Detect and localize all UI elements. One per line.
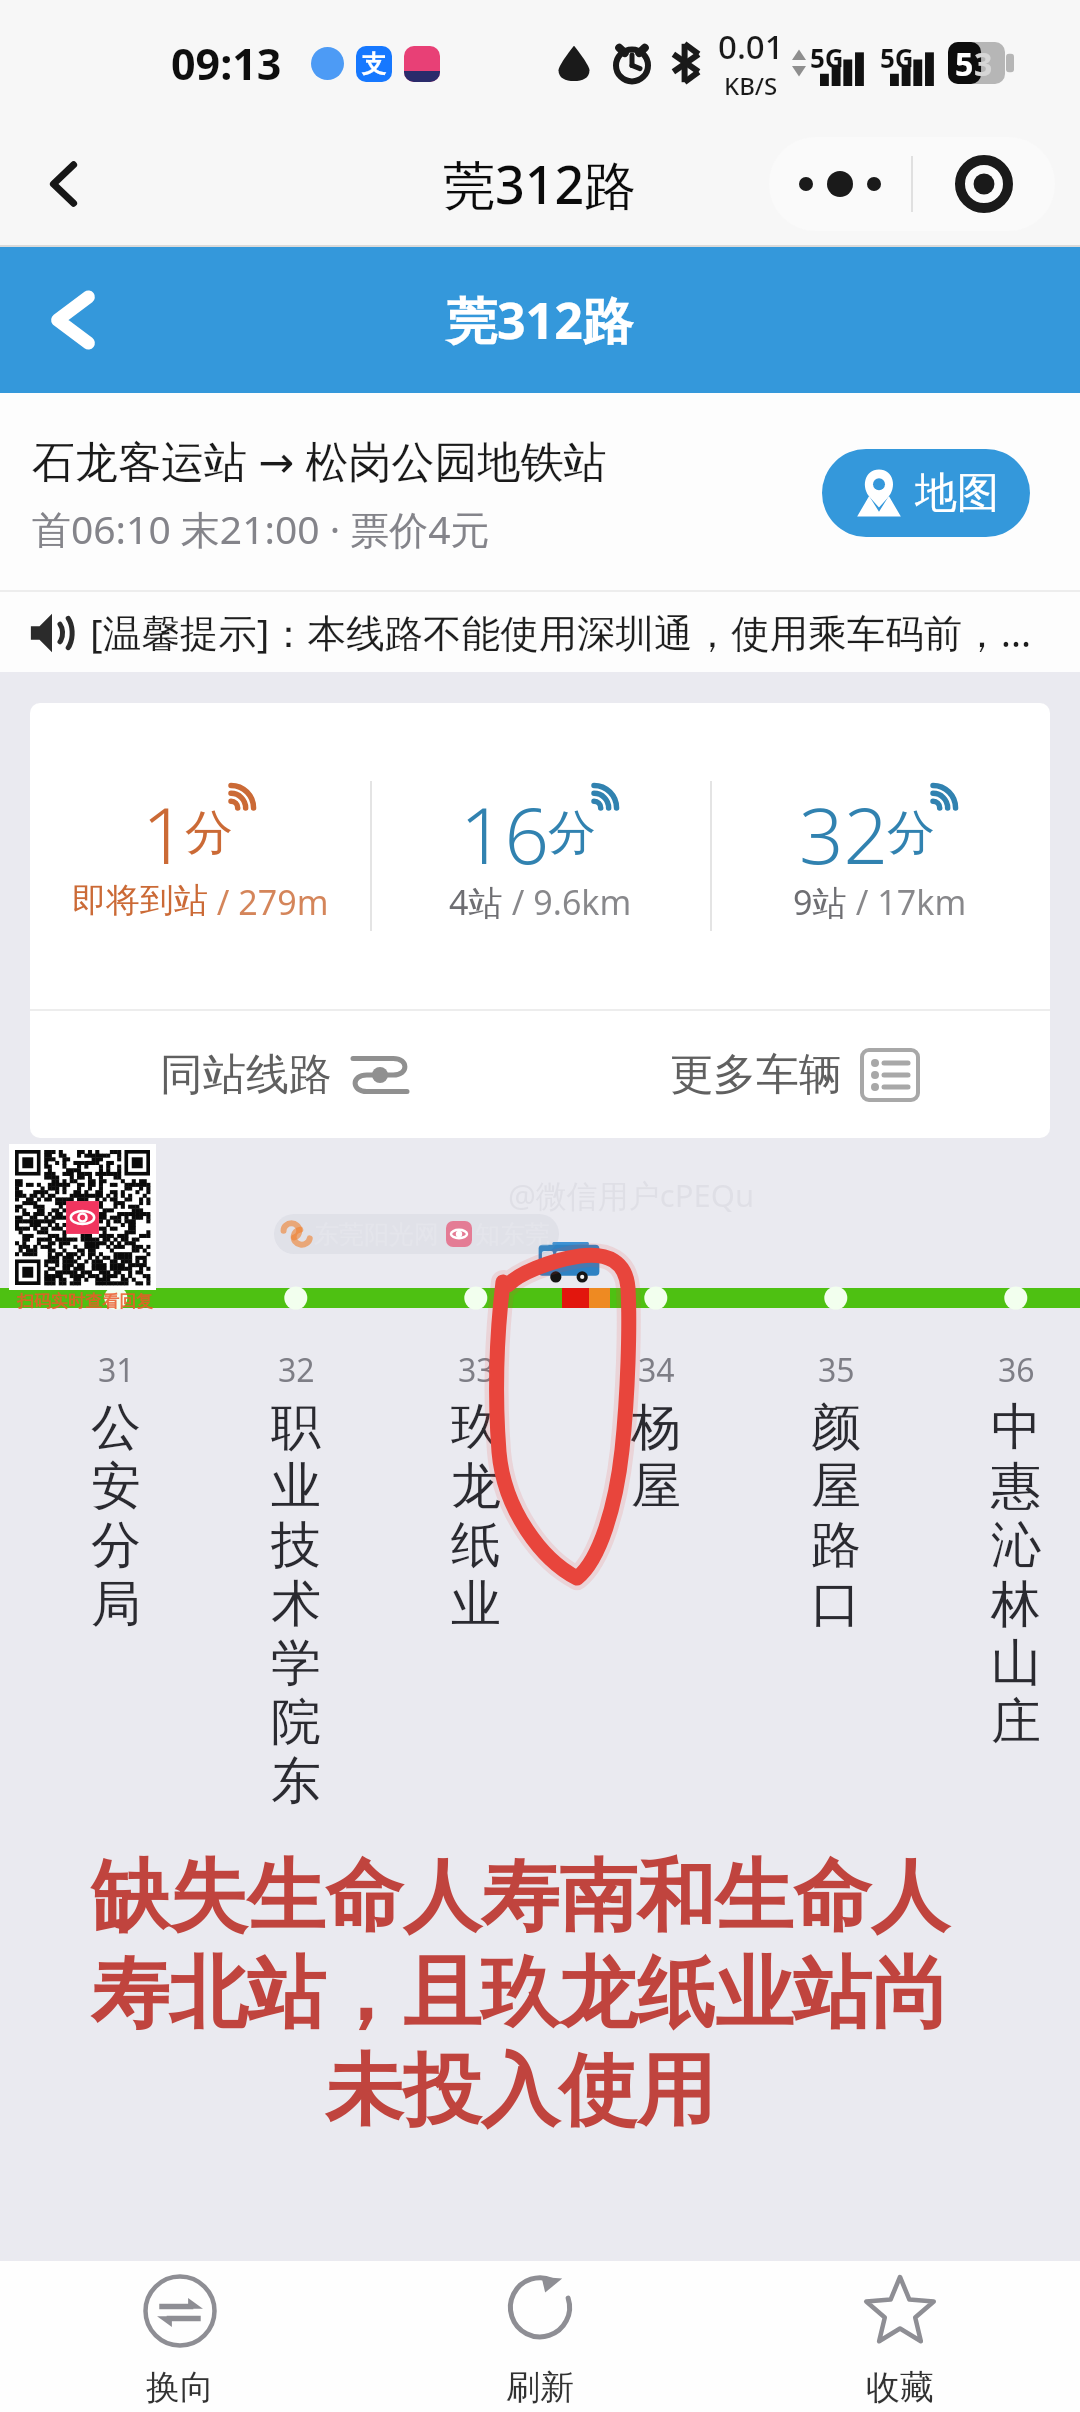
button[interactable]: 34 — [566, 1348, 746, 1518]
staticText: 5 — [955, 42, 974, 84]
staticText: 收藏 — [866, 2366, 934, 2409]
staticText: 35 — [818, 1348, 855, 1392]
button[interactable]: 刷新 — [360, 2261, 720, 2412]
button[interactable]: 更多车辆 — [540, 1011, 1050, 1138]
staticText: 0.01 — [718, 24, 784, 69]
button[interactable]: 36 — [926, 1348, 1080, 1754]
staticText: 莞312路 — [443, 148, 637, 219]
button[interactable]: 31 — [26, 1348, 206, 1636]
staticText: 分 — [185, 803, 233, 863]
button[interactable]: 同站线路 — [30, 1011, 540, 1138]
staticText: 刷新 — [506, 2366, 574, 2409]
staticText: 34 — [638, 1348, 675, 1392]
staticText: 地图 — [915, 467, 999, 520]
staticText: 16 — [460, 781, 550, 887]
staticText: 颜 屋 路 口 — [811, 1396, 861, 1636]
staticText: KB/S — [724, 69, 778, 102]
staticText: 1 — [142, 781, 187, 887]
staticText: / 279m — [208, 879, 329, 925]
staticText: 同站线路 — [160, 1048, 332, 1102]
staticText: 分 — [887, 803, 935, 863]
staticText: 36 — [998, 1348, 1035, 1392]
staticText: / 17km — [847, 879, 967, 925]
staticText: 5G — [810, 40, 844, 75]
staticText: 32 — [278, 1348, 315, 1392]
staticText: 即将到站 — [72, 879, 208, 922]
button[interactable]: More options and Close — [769, 137, 1055, 231]
button[interactable]: Back — [28, 275, 118, 365]
staticText: 缺失生命人寿南和生命人 寿北站，且玖龙纸业站尚 未投入使用 — [91, 1848, 949, 2141]
button[interactable]: 33 — [386, 1348, 566, 1636]
staticText: 5G — [880, 40, 914, 75]
staticText: 公 安 分 局 — [91, 1396, 141, 1636]
button[interactable]: 1 — [30, 703, 370, 1009]
button[interactable]: 收藏 — [720, 2261, 1080, 2412]
button[interactable]: 32 — [206, 1348, 386, 1813]
staticText: / 9.6km — [503, 879, 632, 925]
staticText: 32 — [799, 781, 889, 887]
button[interactable]: 35 — [746, 1348, 926, 1636]
button[interactable]: 地图 — [822, 449, 1030, 537]
button[interactable]: Back — [24, 144, 104, 224]
staticText: 玖 龙 纸 业 — [451, 1396, 501, 1636]
staticText: 31 — [98, 1348, 135, 1392]
staticText: 09:13 — [171, 34, 282, 93]
staticText: 扫码实时查看回复 — [17, 1291, 153, 1312]
staticText: 更多车辆 — [670, 1048, 842, 1102]
button[interactable]: 16 — [370, 703, 710, 1009]
staticText: 职 业 技 术 学 院 东 — [271, 1396, 321, 1813]
button[interactable]: 32 — [710, 703, 1050, 1009]
staticText: 分 — [548, 803, 596, 863]
staticText: 杨 屋 — [631, 1396, 681, 1518]
staticText: 支 — [362, 49, 386, 79]
staticText: 4站 — [449, 879, 503, 925]
staticText: 33 — [458, 1348, 495, 1392]
staticText: 中 惠 沁 林 山 庄 — [991, 1396, 1041, 1754]
staticText: [温馨提示]：本线路不能使用深圳通，使用乘车码前，… — [90, 606, 1032, 659]
staticText: 3 — [974, 42, 993, 84]
button[interactable]: 换向 — [0, 2261, 360, 2412]
staticText: 知东莞 — [475, 1219, 550, 1250]
staticText: 首06:10 末21:00 · 票价4元 — [32, 502, 490, 555]
staticText: 换向 — [146, 2366, 214, 2409]
staticText: 莞312路 — [447, 286, 633, 354]
staticText: @微信用户cPEQu — [508, 1174, 755, 1216]
staticText: 石龙客运站 → 松岗公园地铁站 — [32, 431, 607, 490]
staticText: 9站 — [793, 879, 847, 925]
button[interactable]: [温馨提示]：本线路不能使用深圳通，使用乘车码前，… — [0, 592, 1080, 672]
